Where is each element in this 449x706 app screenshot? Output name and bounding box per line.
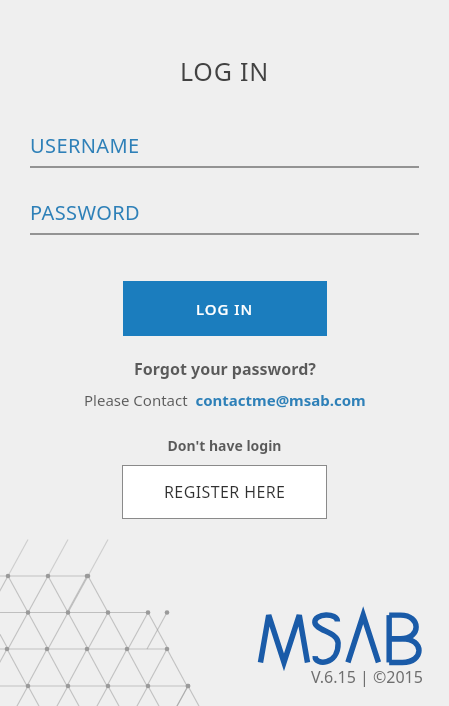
- button[interactable]: LOG IN: [123, 281, 327, 336]
- button[interactable]: Please Contact contactme@msab.com: [0, 390, 449, 410]
- staticText: LOG IN: [196, 299, 254, 319]
- button[interactable]: PASSWORD: [30, 191, 419, 233]
- button[interactable]: USERNAME: [30, 124, 419, 166]
- staticText: LOG IN: [0, 54, 449, 88]
- staticText: USERNAME: [30, 132, 140, 159]
- button[interactable]: REGISTER HERE: [122, 465, 327, 519]
- staticText: V.6.15 | ©2015: [311, 666, 423, 688]
- button[interactable]: Forgot your password?: [0, 358, 449, 380]
- staticText: PASSWORD: [30, 199, 141, 226]
- staticText: Please Contact contactme@msab.com: [84, 390, 366, 410]
- staticText: Don't have login: [0, 436, 449, 455]
- staticText: Forgot your password?: [134, 358, 316, 380]
- staticText: REGISTER HERE: [164, 481, 286, 503]
